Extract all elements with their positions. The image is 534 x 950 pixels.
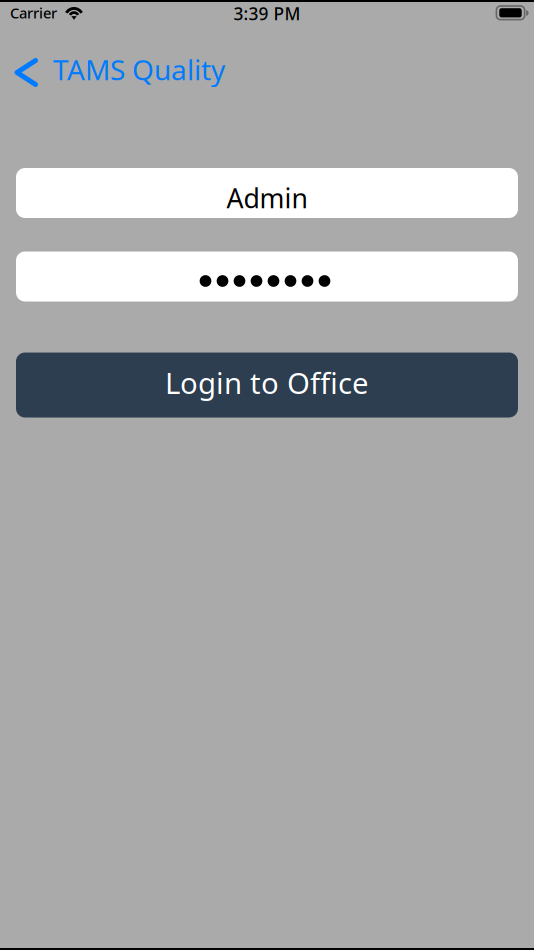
button[interactable]: TAMS Quality (0, 23, 237, 109)
staticText: 3:39 PM (233, 2, 300, 25)
button[interactable]: Admin (16, 168, 518, 218)
staticText: Admin (226, 180, 307, 216)
staticText: Carrier (10, 3, 57, 22)
staticText: TAMS Quality (53, 51, 225, 88)
staticText: Login to Office (165, 363, 369, 402)
button[interactable]: Password (16, 251, 518, 301)
button[interactable]: Login to Office (16, 352, 518, 417)
